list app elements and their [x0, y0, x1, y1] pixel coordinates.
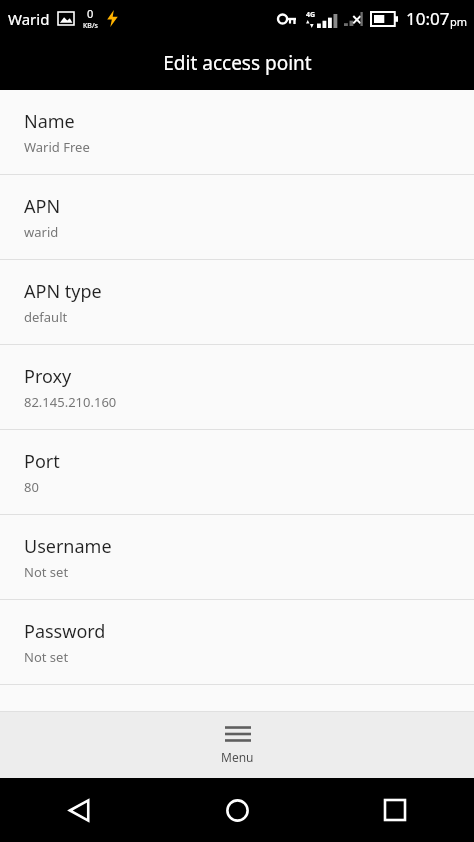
staticText: Warid: [8, 9, 50, 29]
staticText: Username: [24, 534, 112, 559]
staticText: 4G: [306, 10, 316, 20]
button[interactable]: Name: [0, 90, 474, 175]
staticText: APN: [24, 194, 61, 219]
button[interactable]: APN type: [0, 260, 474, 345]
staticText: APN type: [24, 279, 102, 304]
staticText: 0: [87, 6, 94, 21]
button[interactable]: Port: [0, 430, 474, 515]
button[interactable]: Back: [0, 778, 158, 842]
button[interactable]: APN: [0, 175, 474, 260]
staticText: pm: [450, 14, 468, 29]
staticText: 10:07: [406, 7, 450, 30]
button[interactable]: Home: [158, 778, 316, 842]
staticText: Proxy: [24, 364, 72, 389]
staticText: Password: [24, 619, 106, 644]
staticText: Not set: [24, 648, 69, 666]
staticText: 80: [24, 478, 39, 496]
staticText: 82.145.210.160: [24, 393, 117, 411]
staticText: Warid Free: [24, 138, 90, 156]
button[interactable]: Username: [0, 515, 474, 600]
staticText: Edit access point: [163, 50, 312, 76]
staticText: KB/s: [83, 21, 98, 31]
staticText: Not set: [24, 563, 69, 581]
staticText: warid: [24, 223, 59, 241]
button[interactable]: Menu: [0, 712, 474, 778]
staticText: Port: [24, 449, 60, 474]
button[interactable]: Recent apps: [316, 778, 474, 842]
button[interactable]: Proxy: [0, 345, 474, 430]
staticText: Name: [24, 109, 75, 134]
button[interactable]: Password: [0, 600, 474, 685]
staticText: default: [24, 308, 68, 326]
staticText: Menu: [221, 749, 254, 765]
